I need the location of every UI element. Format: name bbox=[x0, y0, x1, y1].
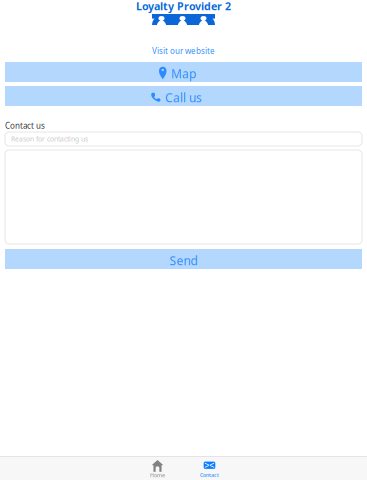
button[interactable]: Home bbox=[131, 457, 183, 480]
button[interactable]: Call us bbox=[5, 86, 362, 106]
staticText: Send bbox=[169, 252, 197, 268]
staticText: Home bbox=[150, 472, 165, 479]
staticText: Reason for contacting us bbox=[11, 135, 88, 143]
button[interactable]: Send bbox=[5, 249, 362, 269]
staticText: Loyalty Provider 2 bbox=[136, 0, 231, 13]
button[interactable]: Map bbox=[5, 62, 362, 82]
staticText: Map bbox=[171, 65, 196, 81]
button[interactable]: Visit our website bbox=[0, 44, 367, 58]
staticText: Contact bbox=[200, 471, 219, 479]
staticText: Contact us bbox=[5, 120, 45, 131]
staticText: Visit our website bbox=[152, 46, 215, 56]
button[interactable]: Contact bbox=[183, 457, 235, 480]
staticText: Call us bbox=[165, 89, 202, 105]
